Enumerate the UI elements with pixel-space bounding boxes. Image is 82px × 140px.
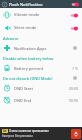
- button[interactable]: Vibrate mode: [0, 8, 82, 21]
- staticText: Очень полезное приложение: [9, 129, 49, 133]
- button[interactable]: DND End: [0, 94, 82, 106]
- button[interactable]: Silent mode: [0, 21, 82, 34]
- button[interactable]: Master toggle: [70, 0, 80, 8]
- button[interactable]: DND toggle: [73, 76, 77, 80]
- button[interactable]: Advertisement: [0, 127, 82, 140]
- staticText: DND Start: [14, 86, 69, 91]
- staticText: быстро и без рекламы: [2, 134, 33, 138]
- button[interactable]: Notification Apps: [0, 42, 82, 54]
- button[interactable]: Battery percent: [0, 62, 82, 74]
- staticText: Disable when battery below: [3, 56, 79, 61]
- staticText: Notification Apps: [14, 46, 73, 51]
- staticText: 00:00: [69, 86, 78, 91]
- button[interactable]: DND Start: [0, 82, 82, 94]
- staticText: Advance: [3, 36, 79, 41]
- staticText: Battery percent: [14, 66, 72, 71]
- staticText: Ad: [3, 129, 7, 133]
- staticText: Silent mode: [14, 25, 68, 30]
- staticText: Flash Notification: [9, 2, 70, 7]
- staticText: 1 %: [72, 66, 78, 71]
- button[interactable]: App icon: [2, 2, 7, 7]
- staticText: Do not disturb (DND Mode): [3, 76, 73, 81]
- staticText: DND End: [14, 98, 69, 103]
- button[interactable]: Ad app icon: [71, 129, 81, 139]
- staticText: Vibrate mode: [14, 12, 68, 17]
- staticText: 00:00: [69, 98, 78, 103]
